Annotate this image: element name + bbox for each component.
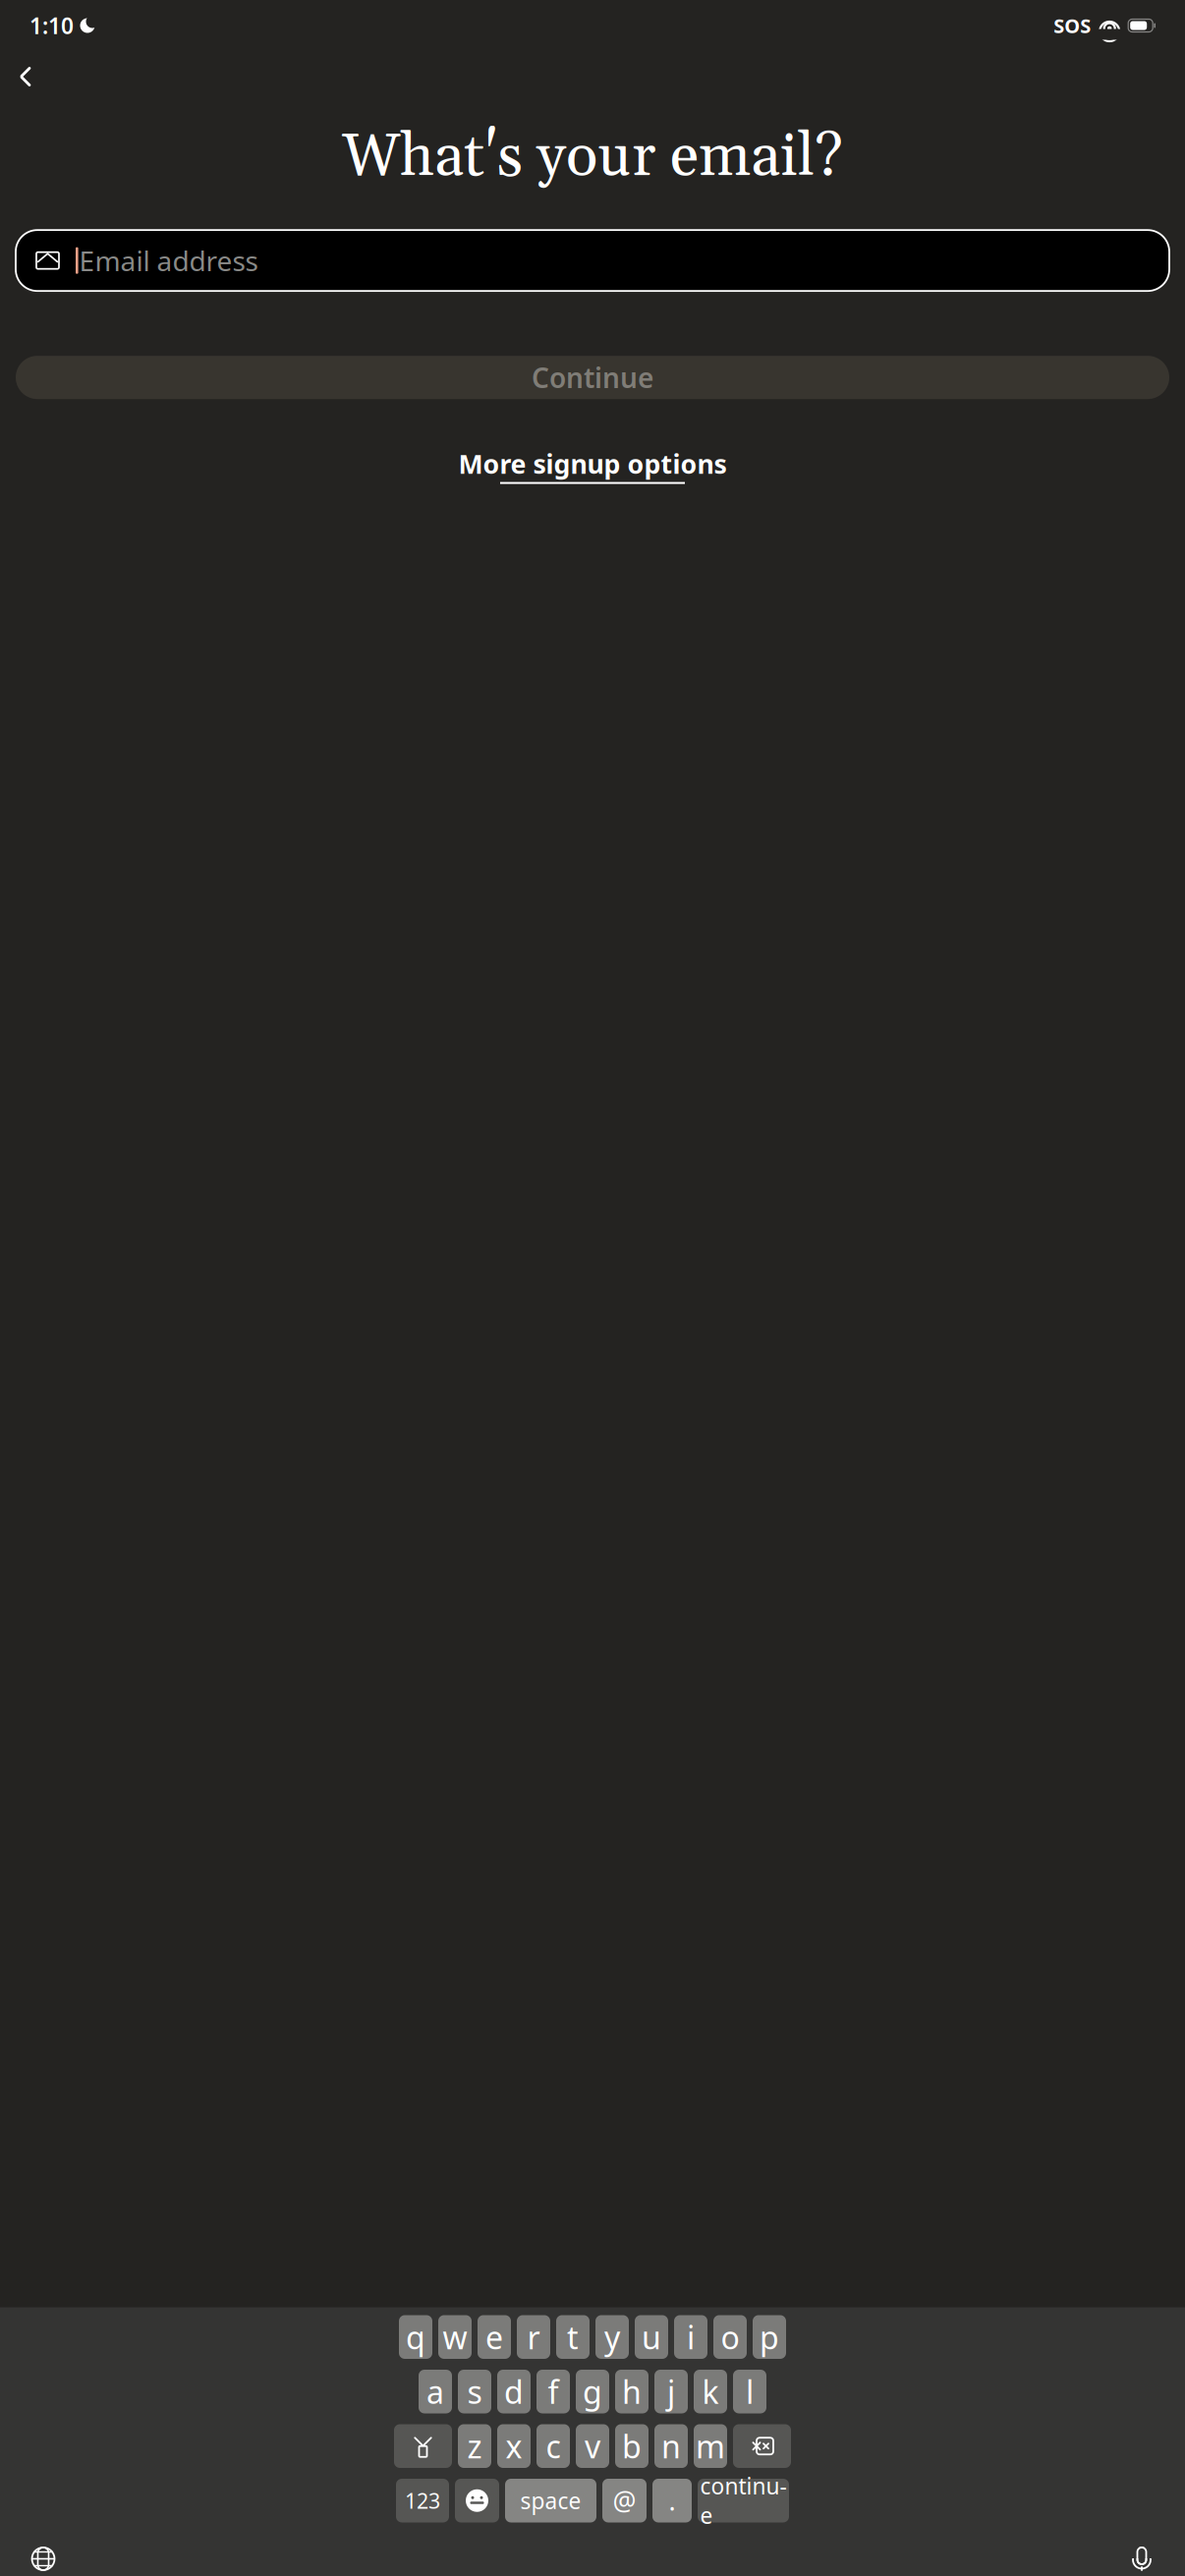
- button[interactable]: a: [419, 2370, 452, 2413]
- button[interactable]: l: [733, 2370, 766, 2413]
- button[interactable]: e: [478, 2315, 511, 2359]
- button[interactable]: x: [497, 2424, 531, 2468]
- button[interactable]: n: [654, 2424, 688, 2468]
- staticText: o: [721, 2316, 739, 2358]
- staticText: w: [443, 2316, 467, 2358]
- staticText: d: [504, 2371, 524, 2412]
- button[interactable]: y: [595, 2315, 629, 2359]
- staticText: h: [622, 2371, 642, 2412]
- button[interactable]: f: [536, 2370, 570, 2413]
- staticText: 1:10: [29, 11, 74, 40]
- staticText: f: [548, 2371, 559, 2412]
- staticText: k: [702, 2371, 719, 2412]
- staticText: q: [406, 2316, 425, 2358]
- button[interactable]: m: [694, 2424, 727, 2468]
- staticText: .: [669, 2483, 676, 2518]
- button[interactable]: .: [652, 2479, 692, 2522]
- staticText: p: [760, 2316, 779, 2358]
- button[interactable]: r: [517, 2315, 550, 2359]
- staticText: c: [546, 2425, 561, 2467]
- staticText: i: [687, 2316, 695, 2358]
- button[interactable]: Emoji: [455, 2479, 499, 2522]
- staticText: g: [583, 2371, 602, 2412]
- staticText: r: [527, 2316, 540, 2358]
- button[interactable]: d: [497, 2370, 531, 2413]
- staticText: Email address: [79, 242, 258, 279]
- button[interactable]: i: [674, 2315, 707, 2359]
- staticText: v: [585, 2425, 600, 2467]
- staticText: s: [467, 2371, 482, 2412]
- button[interactable]: z: [458, 2424, 491, 2468]
- button[interactable]: u: [635, 2315, 668, 2359]
- button[interactable]: w: [438, 2315, 472, 2359]
- button[interactable]: g: [576, 2370, 609, 2413]
- staticText: space: [520, 2486, 581, 2515]
- staticText: b: [622, 2425, 642, 2467]
- staticText: What's your email?: [342, 120, 843, 195]
- staticText: z: [467, 2425, 482, 2467]
- button[interactable]: Delete: [733, 2424, 791, 2468]
- staticText: j: [667, 2371, 675, 2412]
- button[interactable]: o: [713, 2315, 747, 2359]
- button[interactable]: p: [753, 2315, 786, 2359]
- button[interactable]: q: [399, 2315, 432, 2359]
- button[interactable]: b: [615, 2424, 649, 2468]
- staticText: u: [642, 2316, 661, 2358]
- staticText: More signup options: [458, 446, 727, 481]
- button[interactable]: @: [602, 2479, 647, 2522]
- button[interactable]: Continue: [16, 356, 1169, 399]
- button[interactable]: Next keyboard: [22, 2540, 65, 2576]
- staticText: a: [426, 2371, 444, 2412]
- button[interactable]: More signup options: [451, 440, 734, 490]
- staticText: e: [485, 2316, 503, 2358]
- staticText: x: [506, 2425, 522, 2467]
- button[interactable]: space: [505, 2479, 596, 2522]
- staticText: SOS: [1054, 12, 1091, 39]
- staticText: m: [696, 2425, 725, 2467]
- button[interactable]: s: [458, 2370, 491, 2413]
- button[interactable]: c: [536, 2424, 570, 2468]
- button[interactable]: j: [654, 2370, 688, 2413]
- button[interactable]: t: [556, 2315, 590, 2359]
- staticText: 123: [405, 2487, 440, 2514]
- button[interactable]: Dictate: [1120, 2540, 1163, 2576]
- button[interactable]: Back: [6, 57, 45, 96]
- staticText: y: [604, 2316, 620, 2358]
- button[interactable]: Shift: [394, 2424, 452, 2468]
- button[interactable]: continue: [698, 2479, 789, 2522]
- button[interactable]: k: [694, 2370, 727, 2413]
- staticText: n: [661, 2425, 681, 2467]
- staticText: continue: [700, 2471, 787, 2530]
- staticText: l: [746, 2371, 754, 2412]
- button[interactable]: 123: [396, 2479, 449, 2522]
- button[interactable]: v: [576, 2424, 609, 2468]
- staticText: Continue: [532, 359, 653, 396]
- staticText: @: [613, 2483, 636, 2518]
- staticText: t: [567, 2316, 579, 2358]
- button[interactable]: h: [615, 2370, 649, 2413]
